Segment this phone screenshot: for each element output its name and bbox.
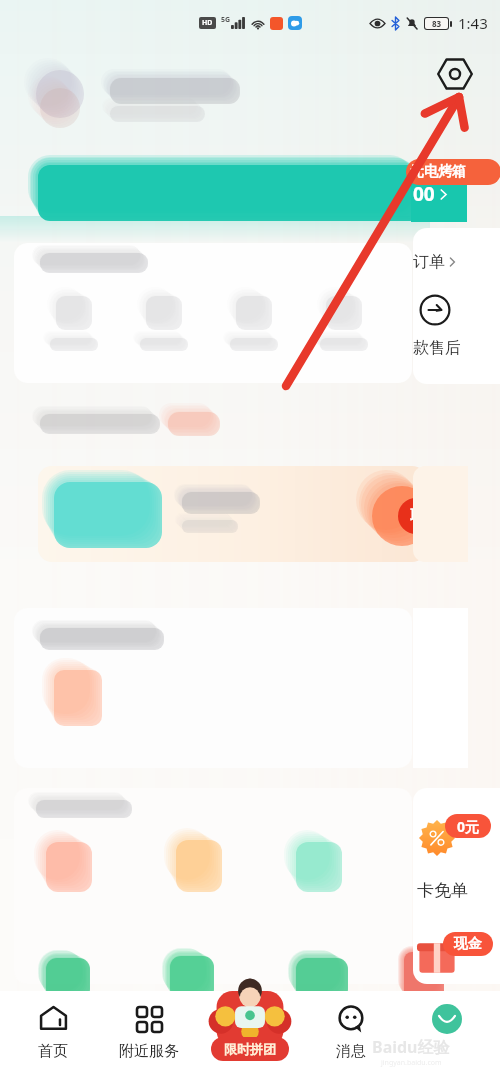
staticText: 款售后 bbox=[413, 338, 461, 358]
staticText: 消息 bbox=[336, 1042, 366, 1061]
other: 我的 bbox=[432, 1004, 462, 1034]
staticText: 0元 bbox=[457, 817, 480, 836]
button[interactable]: 附近服务 bbox=[105, 999, 193, 1061]
other: 首页 bbox=[40, 1006, 67, 1033]
staticText: 订单 bbox=[413, 252, 445, 272]
button[interactable]: 0元 bbox=[413, 788, 500, 984]
staticText: HD bbox=[202, 18, 213, 28]
button[interactable]: 消息 bbox=[307, 999, 395, 1061]
staticText: 元电烤箱 bbox=[410, 163, 466, 181]
staticText: jingyan.baidu.com bbox=[381, 1058, 442, 1068]
button[interactable]: 我的 bbox=[403, 999, 491, 1042]
staticText: Baidu经验 bbox=[372, 1036, 450, 1058]
staticText: 卡免单 bbox=[417, 880, 468, 901]
button[interactable]: 首页 bbox=[9, 999, 97, 1061]
button[interactable]: 订单 bbox=[413, 228, 500, 384]
staticText: 00 bbox=[413, 181, 435, 207]
other: 消息 bbox=[338, 1006, 365, 1033]
staticText: 1:43 bbox=[458, 13, 488, 33]
staticText: 附近服务 bbox=[119, 1042, 179, 1061]
staticText: 限时拼团 bbox=[224, 1041, 276, 1057]
staticText: 5G bbox=[221, 15, 231, 25]
staticText: 83 bbox=[432, 18, 442, 29]
button[interactable]: 限时拼团 bbox=[206, 981, 294, 1065]
button[interactable]: 扫一扫 bbox=[434, 53, 476, 95]
staticText: 取 bbox=[410, 507, 425, 526]
staticText: 首页 bbox=[38, 1042, 68, 1061]
other: 附近服务 bbox=[137, 1007, 162, 1032]
staticText: 现金 bbox=[454, 935, 482, 953]
